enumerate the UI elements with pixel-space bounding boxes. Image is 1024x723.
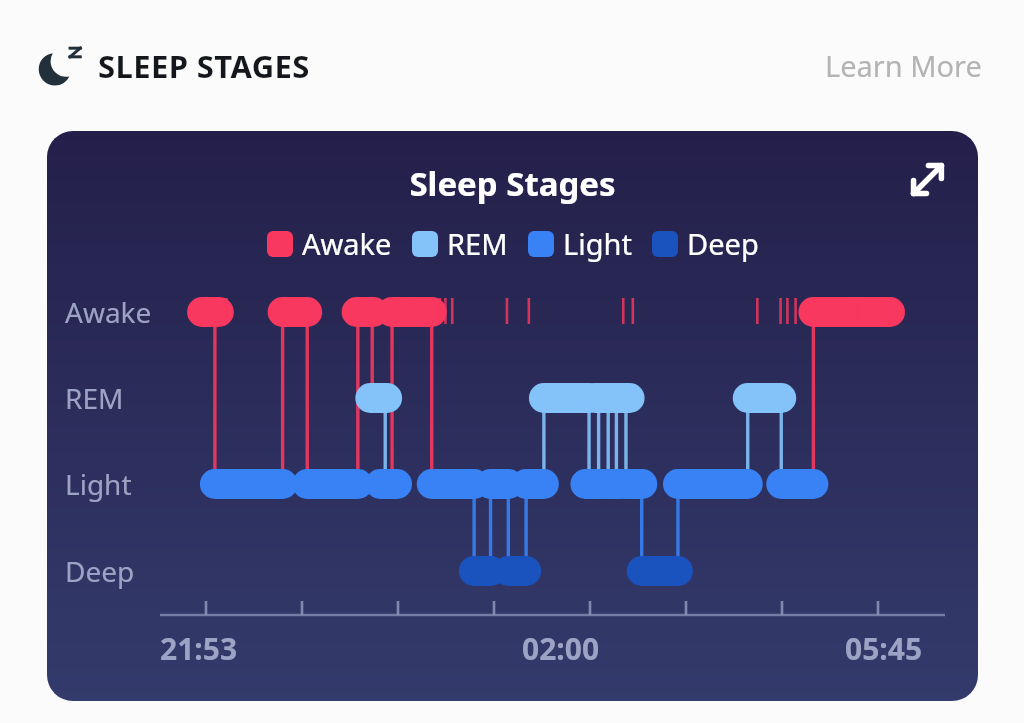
staticText: SLEEP STAGES bbox=[98, 45, 310, 87]
staticText: Deep bbox=[687, 224, 759, 263]
staticText: Awake bbox=[302, 224, 392, 263]
button[interactable]: Light bbox=[528, 224, 632, 263]
button[interactable]: SLEEP STAGES bbox=[36, 33, 310, 99]
staticText: Deep bbox=[65, 552, 135, 590]
staticText: 02:00 bbox=[522, 628, 600, 669]
button[interactable]: REM bbox=[412, 224, 508, 263]
button[interactable]: Expand chart bbox=[894, 147, 960, 213]
button[interactable]: Learn More bbox=[821, 38, 986, 93]
button[interactable]: Sleep Stages bbox=[47, 131, 978, 701]
staticText: Sleep Stages bbox=[409, 161, 616, 206]
staticText: REM bbox=[65, 379, 124, 417]
staticText: Light bbox=[563, 224, 632, 263]
staticText: 21:53 bbox=[160, 628, 238, 669]
staticText: Awake bbox=[65, 293, 152, 331]
staticText: 05:45 bbox=[845, 628, 923, 669]
staticText: REM bbox=[447, 224, 508, 263]
button[interactable]: Deep bbox=[652, 224, 759, 263]
staticText: Learn More bbox=[825, 46, 982, 85]
staticText: Light bbox=[65, 465, 132, 503]
button[interactable]: Awake bbox=[267, 224, 392, 263]
